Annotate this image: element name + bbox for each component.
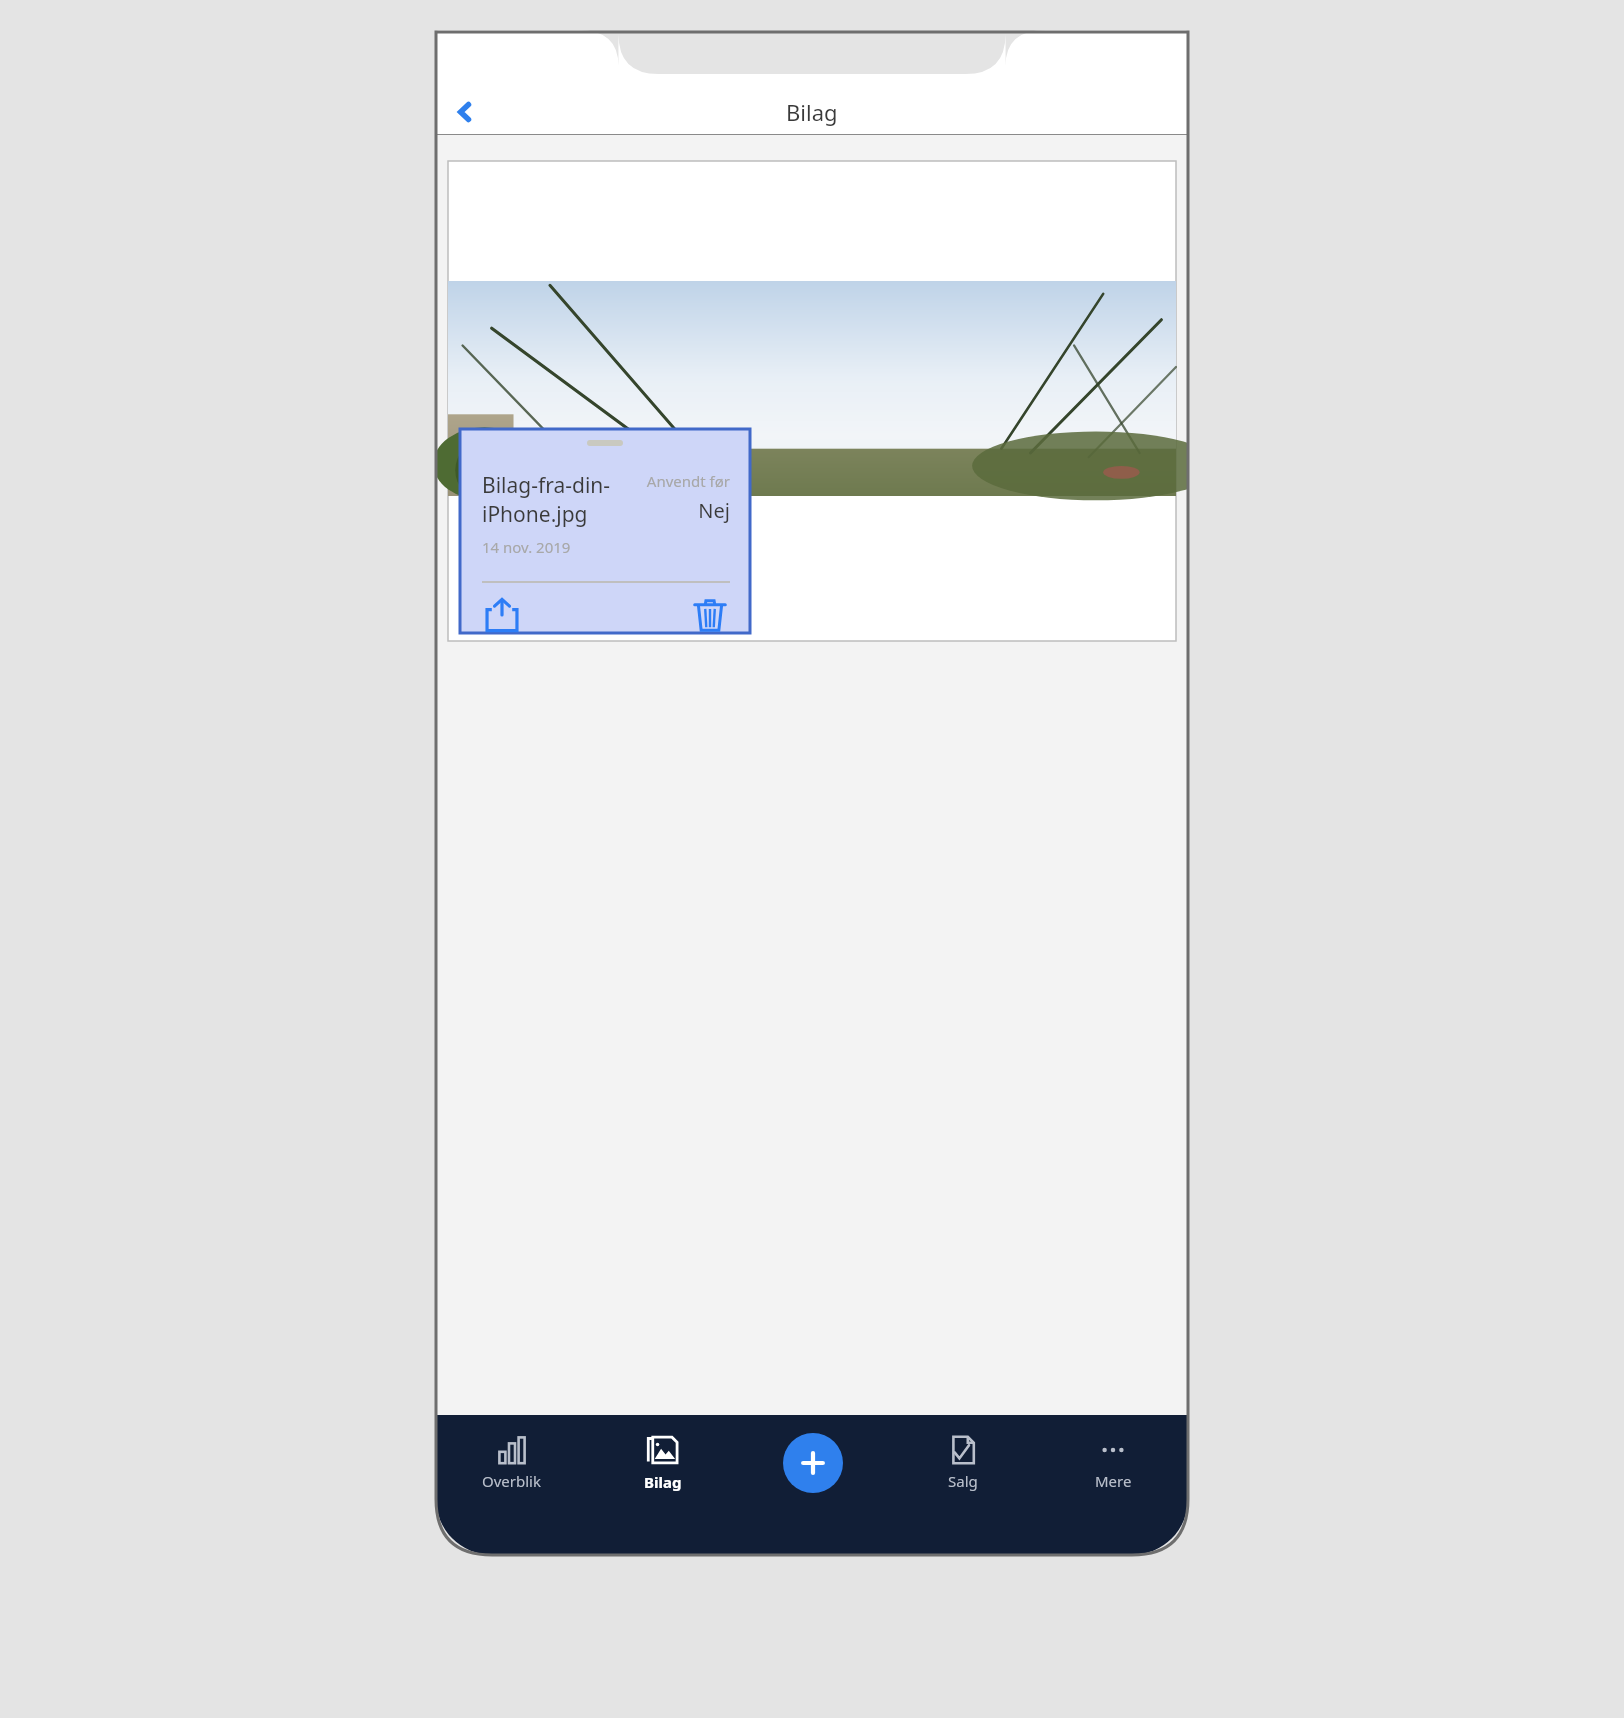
staticText: Salg <box>948 1471 978 1491</box>
button[interactable]: Back <box>442 88 488 135</box>
staticText: Bilag <box>786 97 838 127</box>
staticText: Mere <box>1095 1471 1132 1491</box>
staticText: Overblik <box>482 1471 541 1491</box>
button[interactable]: Overblik <box>436 1415 587 1511</box>
staticText: Bilag <box>644 1472 682 1492</box>
staticText: Bilag-fra-din-iPhone.jpg <box>482 471 646 529</box>
button[interactable]: Share <box>480 597 524 633</box>
staticText: Anvendt før <box>646 471 730 491</box>
staticText: 14 nov. 2019 <box>482 537 571 557</box>
button[interactable]: Salg <box>888 1415 1038 1511</box>
button[interactable]: Mere <box>1038 1415 1188 1511</box>
staticText: Nej <box>698 497 730 524</box>
button[interactable]: Add <box>783 1433 843 1493</box>
button[interactable]: Delete <box>688 597 732 633</box>
button[interactable]: Bilag <box>587 1415 738 1511</box>
